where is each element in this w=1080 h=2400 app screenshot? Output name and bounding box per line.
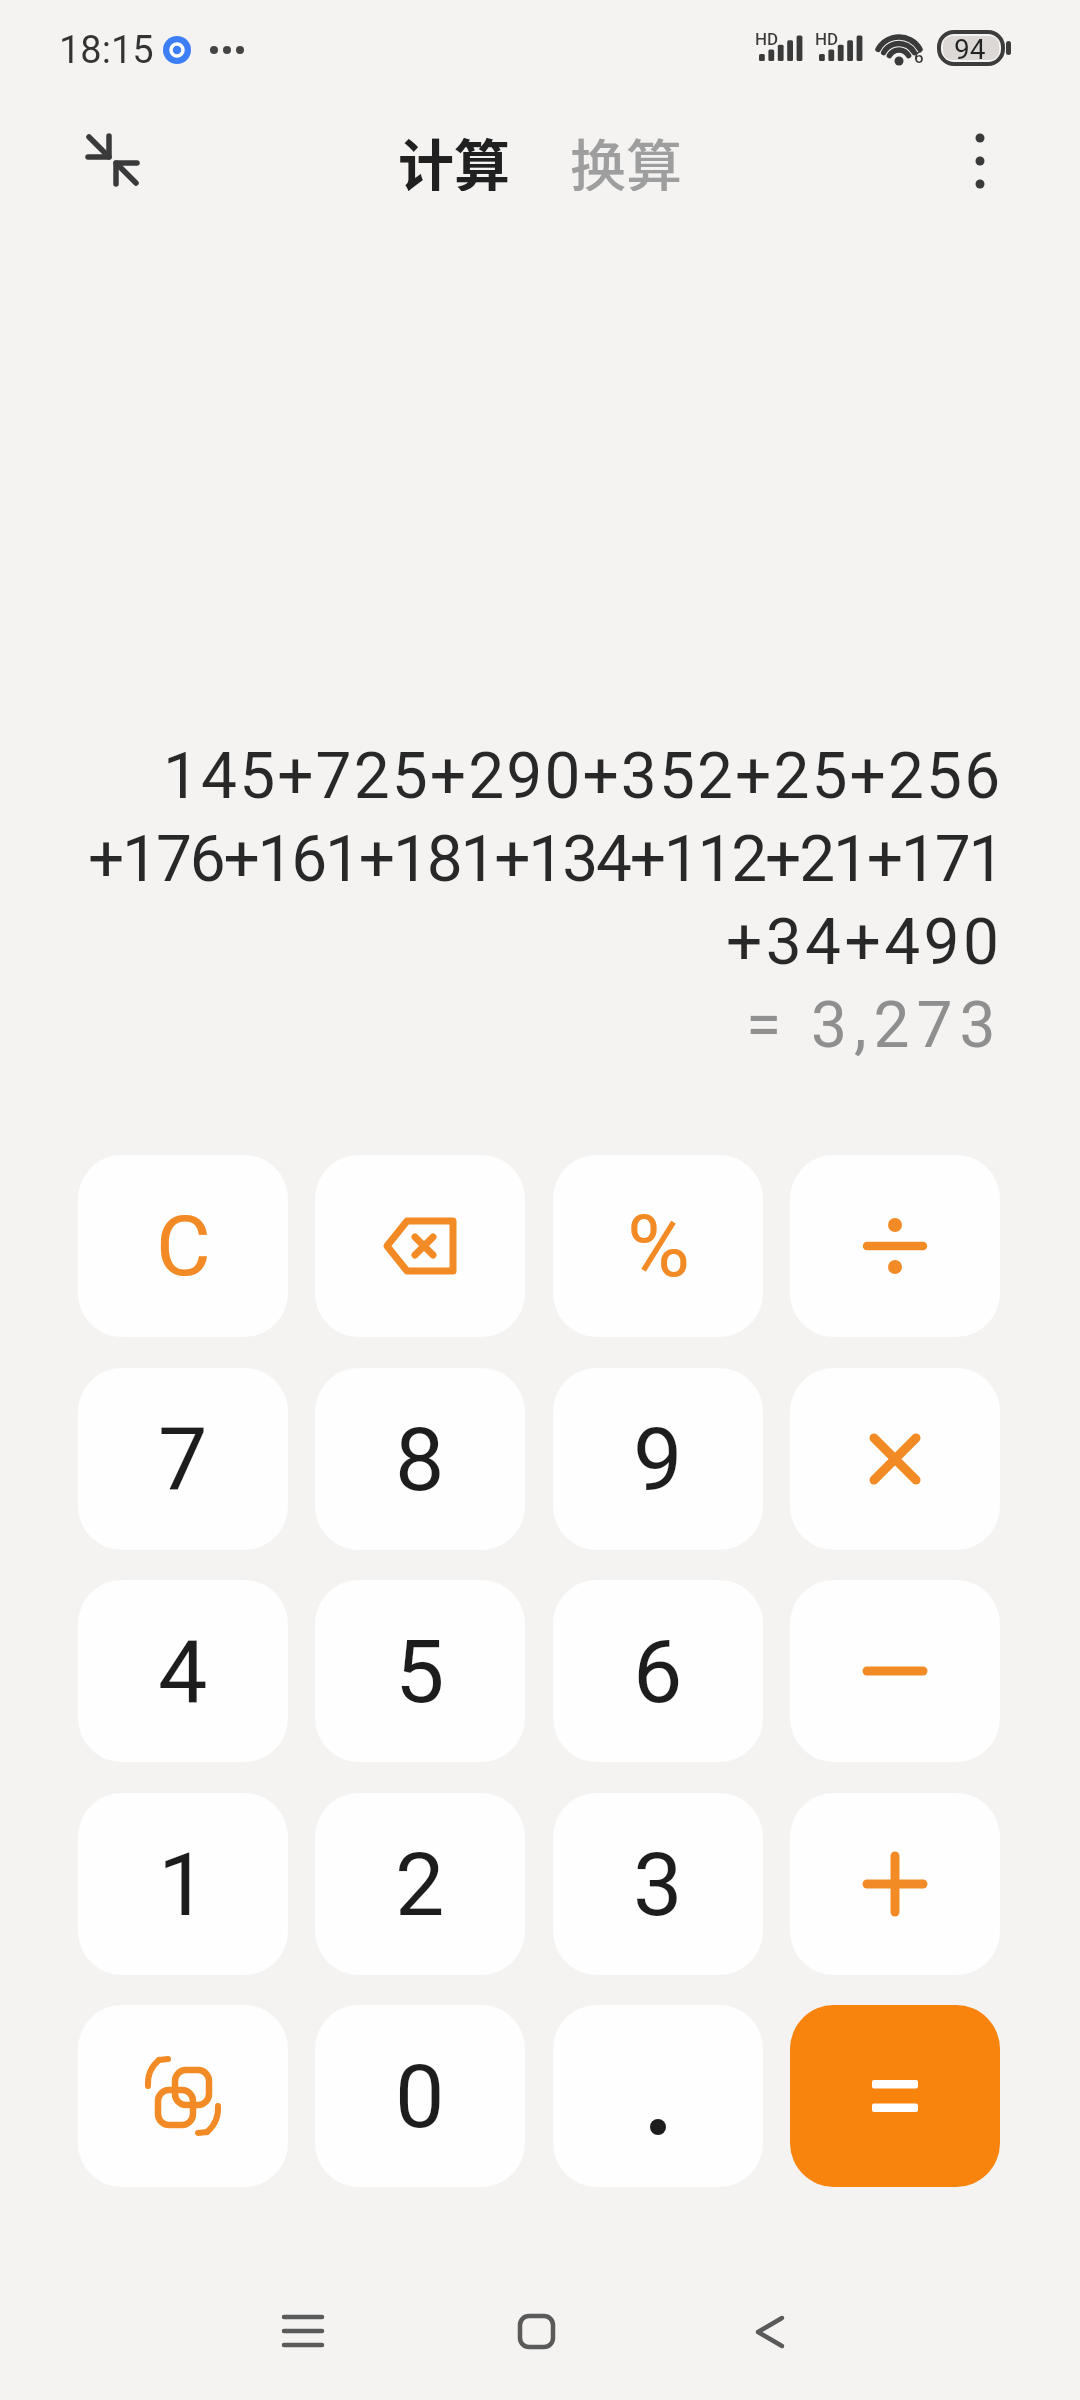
button[interactable]: 7	[78, 1368, 288, 1550]
button[interactable]	[315, 1155, 525, 1337]
staticText: +34+490	[726, 905, 1003, 980]
button[interactable]: 1	[78, 1793, 288, 1975]
button[interactable]	[553, 2005, 763, 2187]
staticText: 18:15	[59, 28, 154, 73]
staticText: 4	[158, 1620, 208, 1723]
staticText: 94	[954, 33, 986, 66]
staticText: 2	[395, 1833, 445, 1936]
button[interactable]	[940, 115, 1020, 200]
button[interactable]: C	[78, 1155, 288, 1337]
button[interactable]	[790, 2005, 1000, 2187]
staticText: 0	[395, 2045, 445, 2148]
staticText: %	[627, 1196, 690, 1297]
staticText: 6	[914, 47, 924, 67]
staticText: 5	[395, 1620, 445, 1723]
staticText: HD	[755, 29, 779, 49]
button[interactable]: 换算	[570, 121, 682, 191]
button[interactable]: 9	[553, 1368, 763, 1550]
button[interactable]: 6	[553, 1580, 763, 1762]
staticText: 1	[158, 1833, 208, 1936]
button[interactable]: 5	[315, 1580, 525, 1762]
staticText: HD	[815, 29, 839, 49]
button[interactable]: 4	[78, 1580, 288, 1762]
staticText: 换算	[570, 121, 682, 191]
staticText: 7	[158, 1408, 208, 1511]
staticText: 145+725+290+352+25+256	[163, 739, 1003, 814]
staticText: C	[156, 1197, 211, 1295]
button[interactable]	[78, 2005, 288, 2187]
staticText: 3	[633, 1833, 683, 1936]
button[interactable]: %	[553, 1155, 763, 1337]
button[interactable]	[790, 1155, 1000, 1337]
staticText: 9	[633, 1408, 683, 1511]
button[interactable]: 8	[315, 1368, 525, 1550]
staticText: 计算	[398, 121, 510, 191]
staticText: = 3,273	[746, 988, 1003, 1063]
button[interactable]: 2	[315, 1793, 525, 1975]
button[interactable]	[70, 112, 160, 202]
staticText: +176+161+181+134+112+21+171	[88, 822, 1003, 897]
button[interactable]	[790, 1793, 1000, 1975]
button[interactable]: 3	[553, 1793, 763, 1975]
button[interactable]	[0, 2290, 360, 2390]
staticText: 6	[633, 1620, 683, 1723]
button[interactable]	[360, 2290, 720, 2390]
button[interactable]: 0	[315, 2005, 525, 2187]
button[interactable]	[720, 2290, 1080, 2390]
staticText: 8	[395, 1408, 445, 1511]
button[interactable]: 计算	[398, 121, 510, 191]
button[interactable]	[790, 1368, 1000, 1550]
button[interactable]	[790, 1580, 1000, 1762]
